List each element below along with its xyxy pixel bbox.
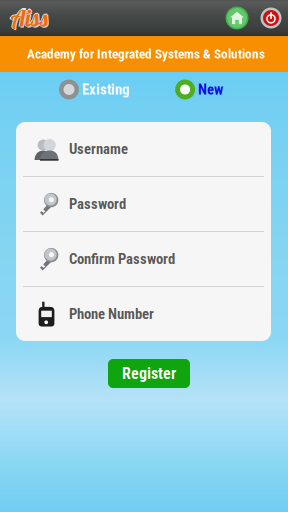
staticText: Academy for Integrated Systems & Solutio… xyxy=(27,46,265,62)
button[interactable]: Username xyxy=(16,122,271,176)
staticText: Aiss xyxy=(12,4,49,32)
staticText: Password xyxy=(69,195,126,213)
button[interactable]: Register xyxy=(108,359,190,388)
staticText: Username xyxy=(69,140,128,158)
button[interactable]: Power xyxy=(259,6,283,30)
button[interactable]: Password xyxy=(16,177,271,231)
staticText: Register xyxy=(122,364,176,383)
button[interactable]: Phone Number xyxy=(16,287,271,341)
staticText: Aiss xyxy=(10,4,47,32)
staticText: Confirm Password xyxy=(69,250,175,268)
button[interactable]: Confirm Password xyxy=(16,232,271,286)
staticText: Phone Number xyxy=(69,305,154,323)
button[interactable]: Home xyxy=(224,5,250,31)
button[interactable]: New xyxy=(175,77,223,101)
staticText: Aiss xyxy=(11,5,48,33)
button[interactable]: Existing xyxy=(59,77,129,101)
staticText: Existing xyxy=(82,81,129,98)
staticText: New xyxy=(198,81,223,98)
staticText: Aiss xyxy=(9,4,46,32)
staticText: Aiss xyxy=(10,3,47,31)
